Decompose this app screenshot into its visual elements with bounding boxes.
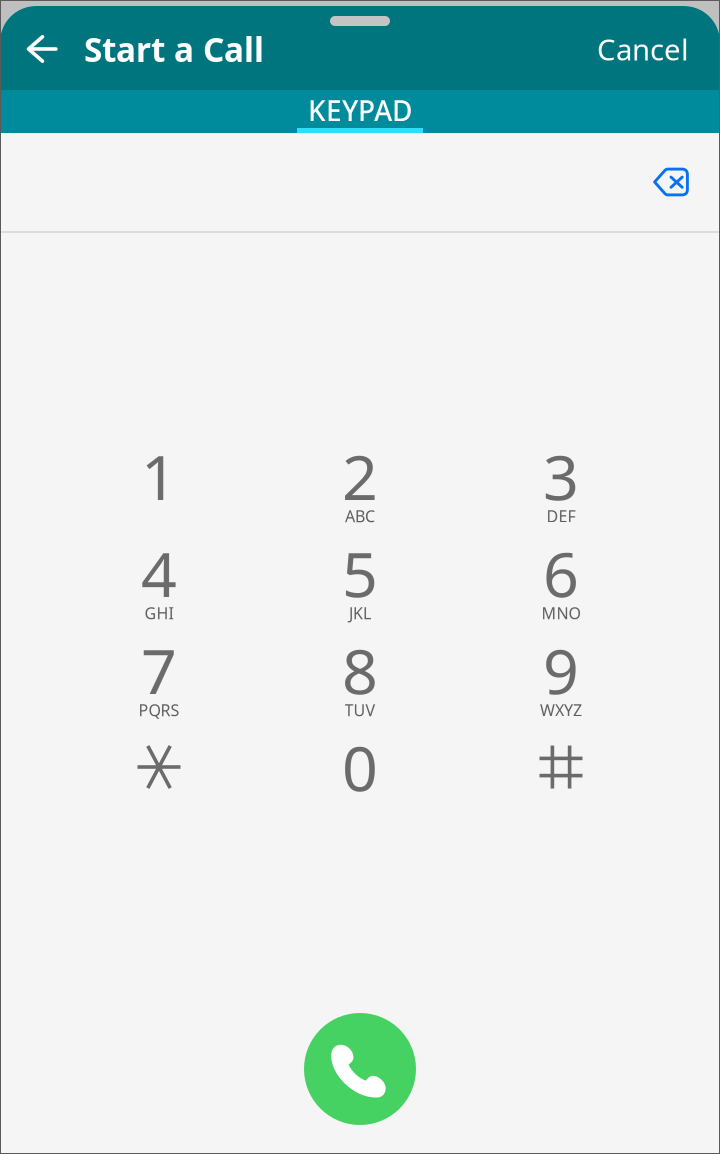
button[interactable]: Call: [304, 1013, 416, 1125]
staticText: ABC: [345, 505, 375, 527]
staticText: 2: [342, 434, 378, 518]
button[interactable]: 5: [259, 542, 460, 639]
button[interactable]: 2: [259, 445, 460, 542]
staticText: 3: [543, 434, 579, 518]
staticText: 4: [141, 531, 177, 615]
staticText: Cancel: [597, 29, 689, 68]
staticText: JKL: [349, 602, 371, 624]
staticText: 1: [141, 434, 177, 518]
staticText: 7: [141, 628, 177, 712]
button[interactable]: 3: [460, 445, 661, 542]
button[interactable]: 7: [58, 639, 259, 736]
staticText: Start a Call: [84, 27, 264, 71]
staticText: PQRS: [138, 699, 179, 721]
button[interactable]: Cancel: [581, 21, 705, 77]
button[interactable]: 0: [259, 736, 460, 833]
staticText: 9: [543, 628, 579, 712]
staticText: TUV: [344, 699, 375, 721]
button[interactable]: [460, 736, 661, 833]
button[interactable]: KEYPAD: [270, 90, 450, 133]
staticText: 5: [342, 531, 378, 615]
button[interactable]: [58, 736, 259, 833]
button[interactable]: 4: [58, 542, 259, 639]
staticText: WXYZ: [540, 699, 582, 721]
staticText: MNO: [541, 602, 580, 624]
staticText: 8: [342, 628, 378, 712]
button[interactable]: 1: [58, 445, 259, 542]
staticText: KEYPAD: [308, 92, 412, 129]
staticText: GHI: [144, 602, 173, 624]
button[interactable]: 9: [460, 639, 661, 736]
button[interactable]: 8: [259, 639, 460, 736]
button[interactable]: Delete: [622, 133, 720, 231]
button[interactable]: 6: [460, 542, 661, 639]
staticText: 6: [543, 531, 579, 615]
staticText: DEF: [546, 505, 575, 527]
staticText: 0: [342, 725, 378, 809]
button[interactable]: Back: [6, 21, 78, 77]
